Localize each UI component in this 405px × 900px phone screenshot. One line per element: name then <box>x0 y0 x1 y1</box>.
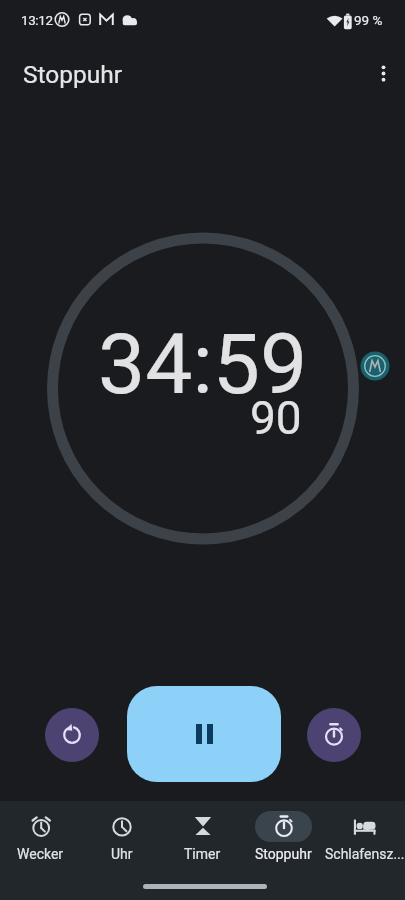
staticText: 90 <box>250 391 302 445</box>
button[interactable]: Timer <box>162 801 243 862</box>
button[interactable]: Schlafensz... <box>324 801 405 862</box>
staticText: 13:12 <box>21 12 53 28</box>
staticText: 34:59 <box>98 315 308 413</box>
staticText: Uhr <box>111 846 133 862</box>
button[interactable] <box>45 708 99 762</box>
button[interactable] <box>371 61 396 86</box>
staticText: 99 % <box>354 12 383 28</box>
button[interactable]: Stoppuhr <box>243 801 324 862</box>
button[interactable]: Wecker <box>0 801 81 862</box>
staticText: Stoppuhr <box>255 846 312 862</box>
staticText: Schlafensz... <box>325 846 405 862</box>
staticText: Stoppuhr <box>23 60 123 89</box>
button[interactable]: Uhr <box>81 801 162 862</box>
staticText: Wecker <box>17 846 64 862</box>
button[interactable] <box>127 686 281 782</box>
button[interactable] <box>307 708 361 762</box>
staticText: Timer <box>184 846 221 862</box>
